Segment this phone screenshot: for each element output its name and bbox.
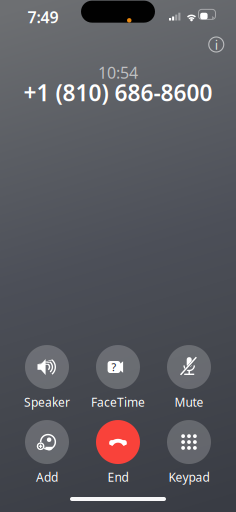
button[interactable]: Keypad (156, 419, 222, 485)
staticText: ? (111, 360, 116, 374)
staticText: Speaker (24, 394, 70, 410)
button[interactable]: End (85, 419, 151, 485)
staticText: 10:54 (98, 62, 138, 83)
staticText: FaceTime (91, 394, 145, 410)
staticText: Keypad (168, 469, 209, 485)
button[interactable]: Mute (156, 344, 222, 410)
button[interactable]: Add (14, 419, 80, 485)
staticText: End (107, 469, 128, 485)
staticText: +1 (810) 686-8600 (23, 77, 212, 107)
staticText: 7:49 (27, 6, 58, 28)
staticText: Add (36, 469, 58, 485)
button[interactable]: Call details (201, 29, 231, 59)
staticText: Mute (174, 394, 203, 410)
staticText: i (215, 36, 218, 53)
button[interactable]: Speaker (14, 344, 80, 410)
button[interactable]: ? (85, 344, 151, 410)
